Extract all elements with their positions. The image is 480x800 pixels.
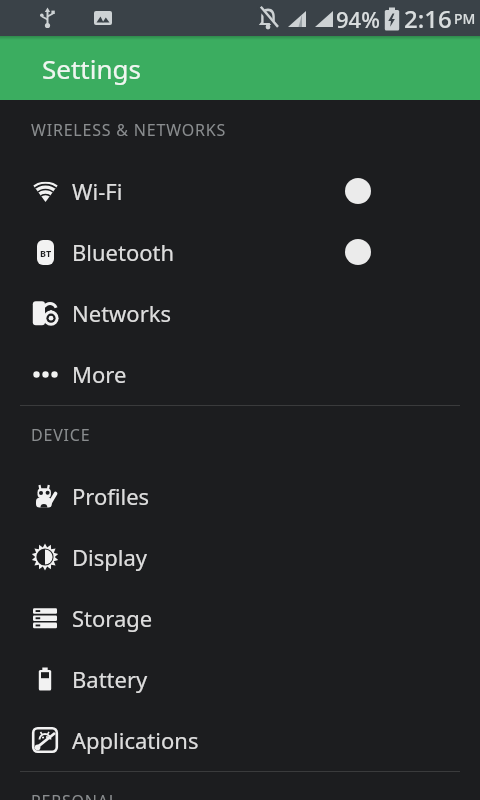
staticText: Wi-Fi <box>72 176 123 206</box>
button[interactable]: Wi-Fi <box>0 160 480 221</box>
staticText: Settings <box>42 51 141 86</box>
staticText: Networks <box>72 298 172 328</box>
button[interactable] <box>345 239 371 265</box>
staticText: DEVICE <box>31 424 91 446</box>
staticText: PERSONAL <box>31 790 118 800</box>
staticText: Display <box>72 542 148 572</box>
staticText: Bluetooth <box>72 237 175 267</box>
staticText: BT <box>40 247 52 259</box>
button[interactable]: Settings <box>0 36 480 100</box>
button[interactable]: Storage <box>0 587 480 648</box>
staticText: Applications <box>72 725 199 755</box>
button[interactable]: Networks <box>0 282 480 343</box>
staticText: Battery <box>72 664 148 694</box>
button[interactable]: More <box>0 343 480 404</box>
staticText: More <box>72 359 127 389</box>
staticText: PM <box>454 9 476 28</box>
staticText: 94% <box>336 4 380 34</box>
button[interactable]: Display <box>0 526 480 587</box>
button[interactable]: Battery <box>0 648 480 709</box>
staticText: WIRELESS & NETWORKS <box>31 119 227 141</box>
staticText: 2:16 <box>404 2 452 35</box>
button[interactable]: Applications <box>0 709 480 770</box>
button[interactable] <box>345 178 371 204</box>
button[interactable]: BT <box>0 221 480 282</box>
button[interactable]: Profiles <box>0 465 480 526</box>
staticText: Storage <box>72 603 153 633</box>
staticText: Profiles <box>72 481 150 511</box>
